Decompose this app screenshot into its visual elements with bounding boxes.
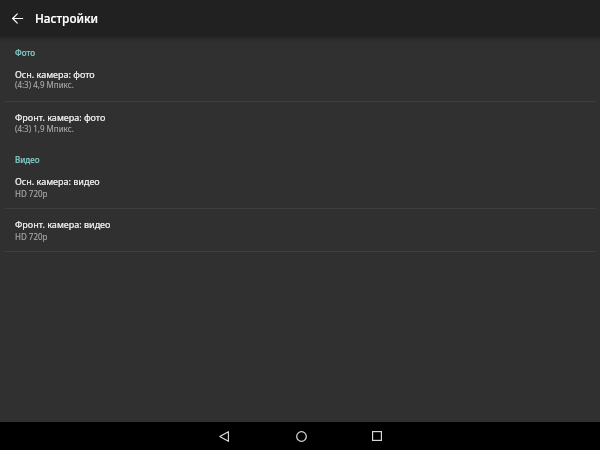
staticText: Фронт. камера: фото — [15, 111, 106, 123]
staticText: Настройки — [35, 10, 99, 26]
staticText: HD 720p — [15, 231, 48, 242]
button[interactable]: Back — [205, 422, 243, 450]
button[interactable]: Осн. камера: фото — [0, 62, 600, 101]
button[interactable]: Recent apps — [358, 422, 396, 450]
staticText: Фото — [15, 47, 36, 58]
staticText: Видео — [15, 154, 40, 165]
button[interactable]: Navigate up — [0, 0, 34, 37]
staticText: (4:3) 1,9 Мпикс. — [15, 123, 74, 134]
button[interactable]: Home — [282, 422, 320, 450]
staticText: Фронт. камера: видео — [15, 218, 111, 230]
button[interactable]: Осн. камера: видео — [0, 169, 600, 208]
staticText: HD 720p — [15, 188, 48, 199]
button[interactable]: Фронт. камера: видео — [0, 209, 600, 251]
staticText: (4:3) 4,9 Мпикс. — [15, 79, 74, 90]
staticText: Осн. камера: фото — [15, 68, 95, 80]
staticText: Осн. камера: видео — [15, 175, 100, 187]
button[interactable]: Фронт. камера: фото — [0, 102, 600, 144]
